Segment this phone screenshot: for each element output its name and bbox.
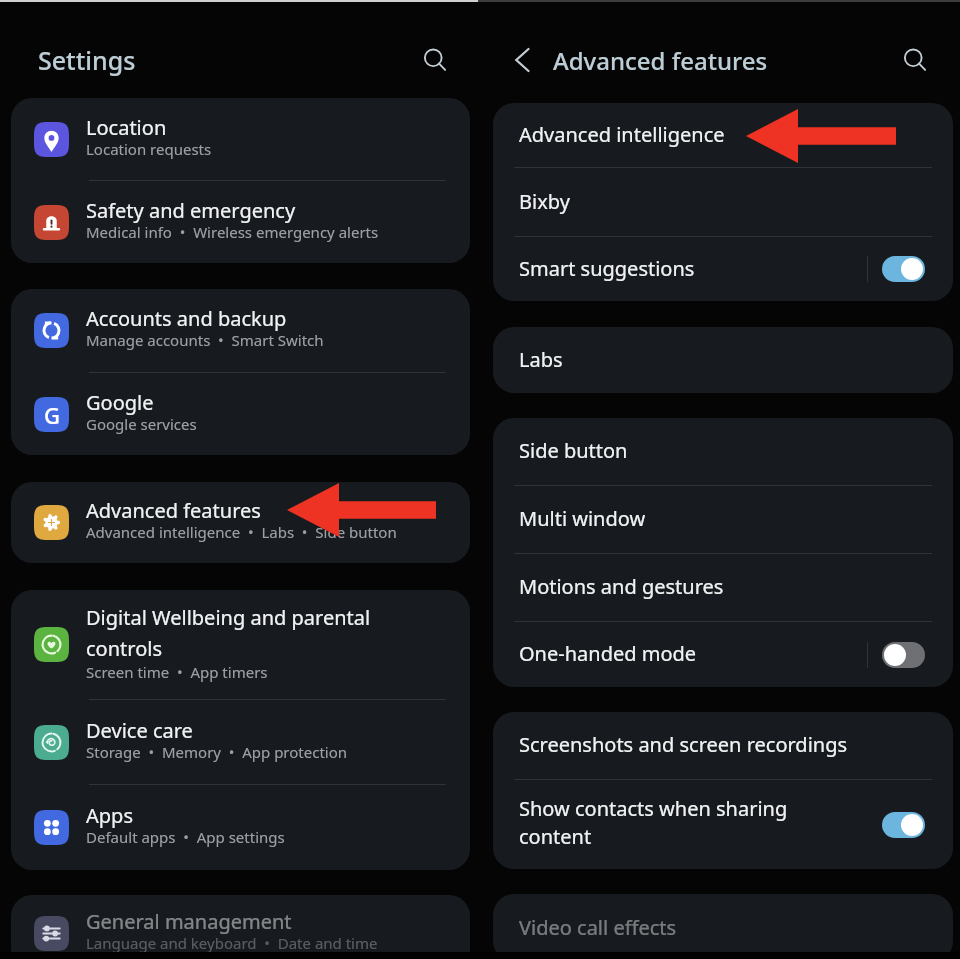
button[interactable]: Video call effects [493, 894, 953, 959]
staticText: Default apps • App settings [86, 827, 285, 847]
staticText: Safety and emergency [86, 197, 296, 224]
button[interactable]: G [11, 373, 470, 455]
button[interactable]: General management [11, 895, 470, 959]
staticText: Show contacts when sharing content [519, 795, 822, 850]
button[interactable]: Accounts and backup [11, 289, 470, 372]
staticText: Location [86, 114, 167, 141]
button[interactable]: Multi window [493, 486, 953, 553]
staticText: Advanced intelligence [519, 121, 725, 148]
button[interactable]: Show contacts when sharing content [882, 812, 925, 838]
staticText: Settings [38, 43, 136, 77]
staticText: Google services [86, 414, 197, 434]
staticText: Location requests [86, 139, 212, 159]
staticText: Advanced features [86, 497, 261, 524]
button[interactable]: Advanced intelligence [493, 103, 953, 167]
staticText: Side button [519, 437, 628, 464]
button[interactable]: Device care [11, 700, 470, 784]
staticText: Video call effects [519, 914, 677, 941]
staticText: Multi window [519, 505, 646, 532]
button[interactable]: Labs [493, 327, 953, 393]
staticText: Device care [86, 717, 193, 744]
staticText: Apps [86, 802, 133, 829]
staticText: Storage • Memory • App protection [86, 742, 348, 762]
button[interactable]: Apps [11, 785, 470, 870]
button[interactable]: Screenshots and screen recordings [493, 712, 953, 779]
button[interactable]: Smart suggestions [882, 256, 925, 282]
staticText: Medical info • Wireless emergency alerts [86, 222, 379, 242]
button[interactable]: Safety and emergency [11, 181, 470, 263]
staticText: One-handed mode [519, 640, 697, 667]
button[interactable]: Back [502, 40, 542, 80]
button[interactable]: One-handed mode [493, 622, 953, 687]
button[interactable]: Search [893, 38, 937, 82]
staticText: Digital Wellbeing and parental controls [86, 604, 450, 662]
staticText: Screenshots and screen recordings [519, 731, 848, 758]
staticText: Screen time • App timers [86, 662, 268, 682]
staticText: Accounts and backup [86, 305, 287, 332]
button[interactable]: Location [11, 98, 470, 180]
button[interactable]: One-handed mode [882, 642, 925, 668]
button[interactable]: Advanced features [11, 482, 470, 563]
staticText: Language and keyboard • Date and time [86, 933, 378, 953]
button[interactable]: Motions and gestures [493, 554, 953, 621]
button[interactable]: Show contacts when sharing content [493, 780, 953, 869]
staticText: Manage accounts • Smart Switch [86, 330, 324, 350]
staticText: Google [86, 389, 154, 416]
staticText: General management [86, 908, 292, 935]
staticText: G [44, 400, 60, 430]
button[interactable]: Smart suggestions [493, 237, 953, 301]
button[interactable]: Search [413, 38, 457, 82]
staticText: Advanced intelligence • Labs • Side butt… [86, 522, 397, 542]
button[interactable]: Bixby [493, 168, 953, 236]
staticText: Labs [519, 346, 563, 373]
button[interactable]: Digital Wellbeing and parental controls [11, 590, 470, 699]
staticText: Bixby [519, 188, 570, 215]
button[interactable]: Side button [493, 418, 953, 485]
staticText: Motions and gestures [519, 573, 724, 600]
staticText: Smart suggestions [519, 255, 695, 282]
staticText: Advanced features [553, 44, 768, 77]
